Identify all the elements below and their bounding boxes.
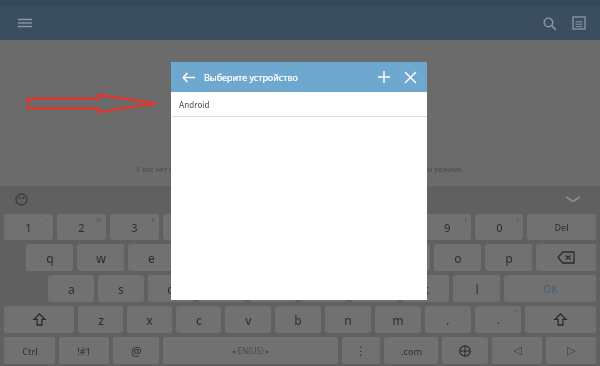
button[interactable]: Close bbox=[397, 64, 423, 90]
button[interactable]: 0 bbox=[475, 214, 523, 240]
button[interactable]: k bbox=[402, 275, 449, 302]
staticText: OK bbox=[543, 282, 558, 296]
staticText: Del bbox=[554, 221, 569, 233]
staticText: ⋮ bbox=[355, 344, 367, 358]
button[interactable]: 3 bbox=[110, 214, 159, 240]
button[interactable]: Del bbox=[527, 214, 596, 240]
button[interactable]: ◂ EN(US) ▸ bbox=[163, 337, 338, 364]
button[interactable]: Hide keyboard bbox=[560, 186, 586, 212]
button[interactable]: p bbox=[485, 244, 532, 271]
button[interactable]: w bbox=[77, 244, 124, 271]
button[interactable]: Menu bbox=[8, 6, 42, 40]
staticText: ( bbox=[465, 216, 467, 224]
button[interactable]: ◁ bbox=[492, 337, 542, 364]
staticText: n bbox=[344, 312, 352, 328]
button[interactable]: f bbox=[198, 275, 245, 302]
button[interactable]: OK bbox=[504, 275, 596, 302]
button[interactable]: 1 bbox=[4, 214, 53, 240]
button[interactable] bbox=[442, 337, 488, 364]
button[interactable]: 2 bbox=[57, 214, 106, 240]
button[interactable]: h bbox=[300, 275, 347, 302]
staticText: @ bbox=[96, 216, 102, 224]
staticText: Android bbox=[179, 99, 210, 110]
button[interactable]: Search bbox=[534, 8, 564, 38]
button[interactable] bbox=[4, 306, 74, 333]
staticText: . bbox=[497, 312, 500, 327]
button[interactable]: !#1 bbox=[59, 337, 109, 364]
staticText: @ bbox=[131, 343, 142, 359]
button[interactable]: Android bbox=[171, 92, 427, 116]
staticText: ) bbox=[517, 216, 519, 224]
button[interactable]: ▷ bbox=[546, 337, 596, 364]
staticText: ◁ bbox=[513, 344, 522, 357]
button[interactable]: d bbox=[148, 275, 194, 302]
button[interactable] bbox=[536, 244, 596, 271]
staticText: m bbox=[392, 312, 404, 328]
button[interactable]: .com bbox=[384, 337, 438, 364]
button[interactable]: s bbox=[98, 275, 144, 302]
button[interactable]: v bbox=[225, 306, 271, 333]
button[interactable]: z bbox=[78, 306, 123, 333]
button[interactable]: b bbox=[275, 306, 321, 333]
button[interactable]: g bbox=[249, 275, 296, 302]
button[interactable]: 9 bbox=[423, 214, 471, 240]
staticText: Ctrl bbox=[22, 345, 38, 357]
staticText: z bbox=[98, 312, 104, 328]
button[interactable]: 4 bbox=[163, 214, 211, 240]
button[interactable]: m bbox=[375, 306, 421, 333]
button[interactable]: Back bbox=[175, 64, 201, 90]
staticText: ? bbox=[514, 308, 517, 316]
button[interactable]: e bbox=[128, 244, 175, 271]
button[interactable]: c bbox=[176, 306, 221, 333]
button[interactable]: ⋮ bbox=[342, 337, 380, 364]
button[interactable]: @ bbox=[113, 337, 159, 364]
button[interactable]: Add bbox=[371, 64, 397, 90]
staticText: # bbox=[151, 216, 155, 224]
staticText: x bbox=[146, 312, 153, 328]
button[interactable]: i bbox=[383, 244, 430, 271]
button[interactable] bbox=[525, 306, 596, 333]
button[interactable]: Emoji bbox=[8, 186, 34, 212]
staticText: e bbox=[148, 250, 155, 266]
button[interactable]: o bbox=[434, 244, 481, 271]
button[interactable]: a bbox=[48, 275, 94, 302]
staticText: k bbox=[422, 281, 429, 297]
staticText: o bbox=[454, 250, 462, 266]
button[interactable]: n bbox=[325, 306, 371, 333]
button[interactable]: More options bbox=[564, 8, 594, 38]
staticText: .com bbox=[401, 345, 422, 357]
staticText: w bbox=[96, 250, 106, 266]
button[interactable]: j bbox=[351, 275, 398, 302]
staticText: , bbox=[446, 312, 450, 327]
staticText: l bbox=[475, 281, 479, 297]
button[interactable]: l bbox=[453, 275, 500, 302]
staticText: 0 bbox=[496, 220, 503, 235]
button[interactable]: x bbox=[127, 306, 172, 333]
staticText: v bbox=[245, 312, 252, 328]
button[interactable]: q bbox=[26, 244, 73, 271]
button[interactable]: Ctrl bbox=[4, 337, 55, 364]
staticText: a bbox=[68, 281, 75, 297]
